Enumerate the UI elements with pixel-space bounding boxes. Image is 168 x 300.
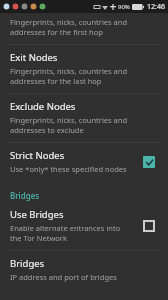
- staticText: Enable alternate entrances into the Tor …: [10, 223, 132, 243]
- button[interactable]: Exit Nodes: [0, 45, 168, 93]
- staticText: Fingerprints, nicks, countries and addre…: [10, 17, 150, 37]
- staticText: Bridges: [10, 190, 40, 201]
- button[interactable]: Strict Nodes: [138, 151, 160, 173]
- staticText: Strict Nodes: [10, 149, 65, 162]
- staticText: 90%: [118, 3, 130, 11]
- staticText: Use *only* these specified nodes: [10, 164, 127, 174]
- staticText: IP address and port of bridges: [10, 272, 117, 282]
- button[interactable]: Strict Nodes: [0, 143, 168, 181]
- button[interactable]: Use Bridges: [0, 204, 168, 250]
- staticText: Bridges: [10, 257, 45, 270]
- button[interactable]: Use Bridges: [138, 215, 160, 237]
- staticText: Exit Nodes: [10, 51, 58, 64]
- staticText: Fingerprints, nicks, countries and addre…: [10, 115, 160, 135]
- staticText: Exclude Nodes: [10, 100, 76, 113]
- button[interactable]: Fingerprints, nicks, countries and addre…: [0, 13, 168, 44]
- staticText: 12:46: [147, 2, 165, 12]
- button[interactable]: Exclude Nodes: [0, 94, 168, 142]
- button[interactable]: Bridges: [0, 251, 168, 289]
- staticText: Use Bridges: [10, 208, 64, 221]
- staticText: Fingerprints, nicks, countries and addre…: [10, 66, 160, 86]
